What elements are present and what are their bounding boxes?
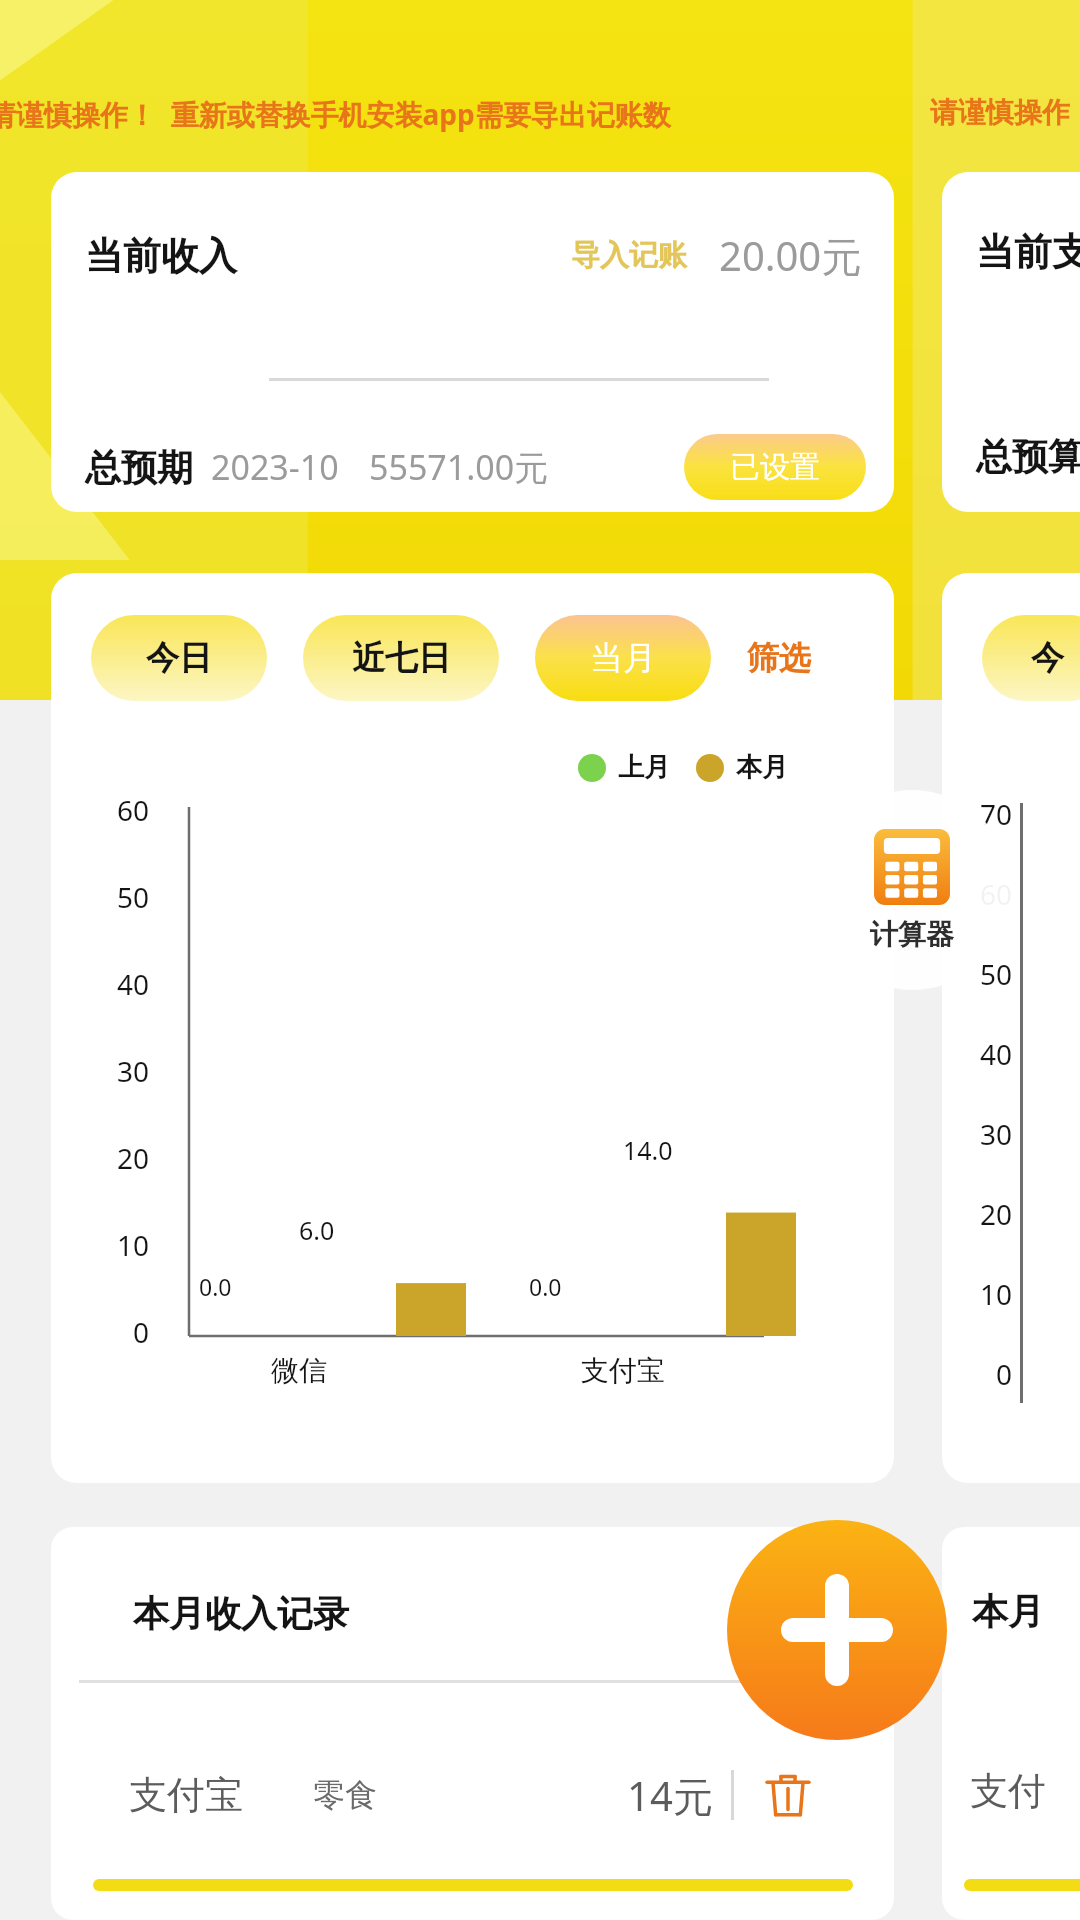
staticText: 请谨慎操作！ 重新或替换手机安装app需要导出记账数 (0, 95, 671, 133)
staticText: 0.0 (529, 1271, 562, 1302)
staticText: 当前收入 (85, 232, 237, 280)
staticText: 6.0 (299, 1213, 335, 1247)
staticText: 20 (942, 1195, 1012, 1233)
button[interactable]: 按日 (740, 1589, 812, 1637)
staticText: 40 (942, 1035, 1012, 1073)
staticText: 微信 (271, 1353, 327, 1388)
button[interactable]: 当月 (535, 615, 711, 701)
button[interactable]: 删除 (760, 1767, 816, 1823)
staticText: 60 (77, 791, 149, 829)
button[interactable]: 计算器 (812, 790, 1012, 990)
button[interactable]: 筛选 (741, 632, 817, 684)
staticText: 总预期 (85, 445, 193, 490)
staticText: 2023-10 (211, 444, 339, 490)
staticText: 今 (1031, 637, 1064, 679)
staticText: 10 (942, 1275, 1012, 1313)
button[interactable]: 添加记账 (727, 1520, 947, 1740)
staticText: 今日 (146, 637, 212, 679)
staticText: 近七日 (352, 637, 451, 679)
staticText: 40 (77, 965, 149, 1003)
staticText: 14.0 (623, 1133, 673, 1167)
staticText: 本月收入记录 (133, 1591, 349, 1636)
staticText: 55571.00元 (369, 444, 549, 490)
staticText: 导入记账 (571, 237, 687, 274)
staticText: 零食 (313, 1775, 377, 1815)
button[interactable]: 今 (982, 615, 1080, 701)
staticText: 总预算 (976, 434, 1080, 479)
staticText: 30 (77, 1052, 149, 1090)
staticText: 当前支 (976, 228, 1080, 276)
staticText: 计算器 (870, 917, 954, 952)
staticText: 支付宝 (581, 1353, 665, 1388)
button[interactable]: 当前收入 (51, 172, 894, 512)
staticText: 请谨慎操作 (930, 95, 1070, 130)
button[interactable]: 导入记账 (565, 231, 693, 280)
staticText: 70 (942, 795, 1012, 833)
staticText: 上月 (618, 751, 670, 784)
staticText: 本月 (736, 751, 788, 784)
staticText: 支付 (970, 1767, 1046, 1815)
staticText: 20.00元 (719, 228, 862, 283)
button[interactable]: 已设置 (684, 434, 866, 500)
staticText: 0 (942, 1355, 1012, 1393)
staticText: 20 (77, 1139, 149, 1177)
staticText: 60 (942, 875, 1012, 913)
staticText: 10 (77, 1226, 149, 1264)
staticText: 当月 (590, 637, 656, 679)
staticText: 30 (942, 1115, 1012, 1153)
button[interactable]: 今日 (91, 615, 267, 701)
staticText: 0.0 (199, 1271, 232, 1302)
staticText: 50 (77, 878, 149, 916)
staticText: 本月 (972, 1589, 1044, 1634)
staticText: 按日 (744, 1593, 808, 1633)
staticText: 筛选 (747, 638, 811, 678)
button[interactable]: 近七日 (303, 615, 499, 701)
staticText: 50 (942, 955, 1012, 993)
staticText: 支付宝 (129, 1771, 243, 1819)
staticText: 14元 (627, 1768, 713, 1823)
staticText: 0 (77, 1313, 149, 1351)
staticText: 已设置 (730, 448, 820, 486)
